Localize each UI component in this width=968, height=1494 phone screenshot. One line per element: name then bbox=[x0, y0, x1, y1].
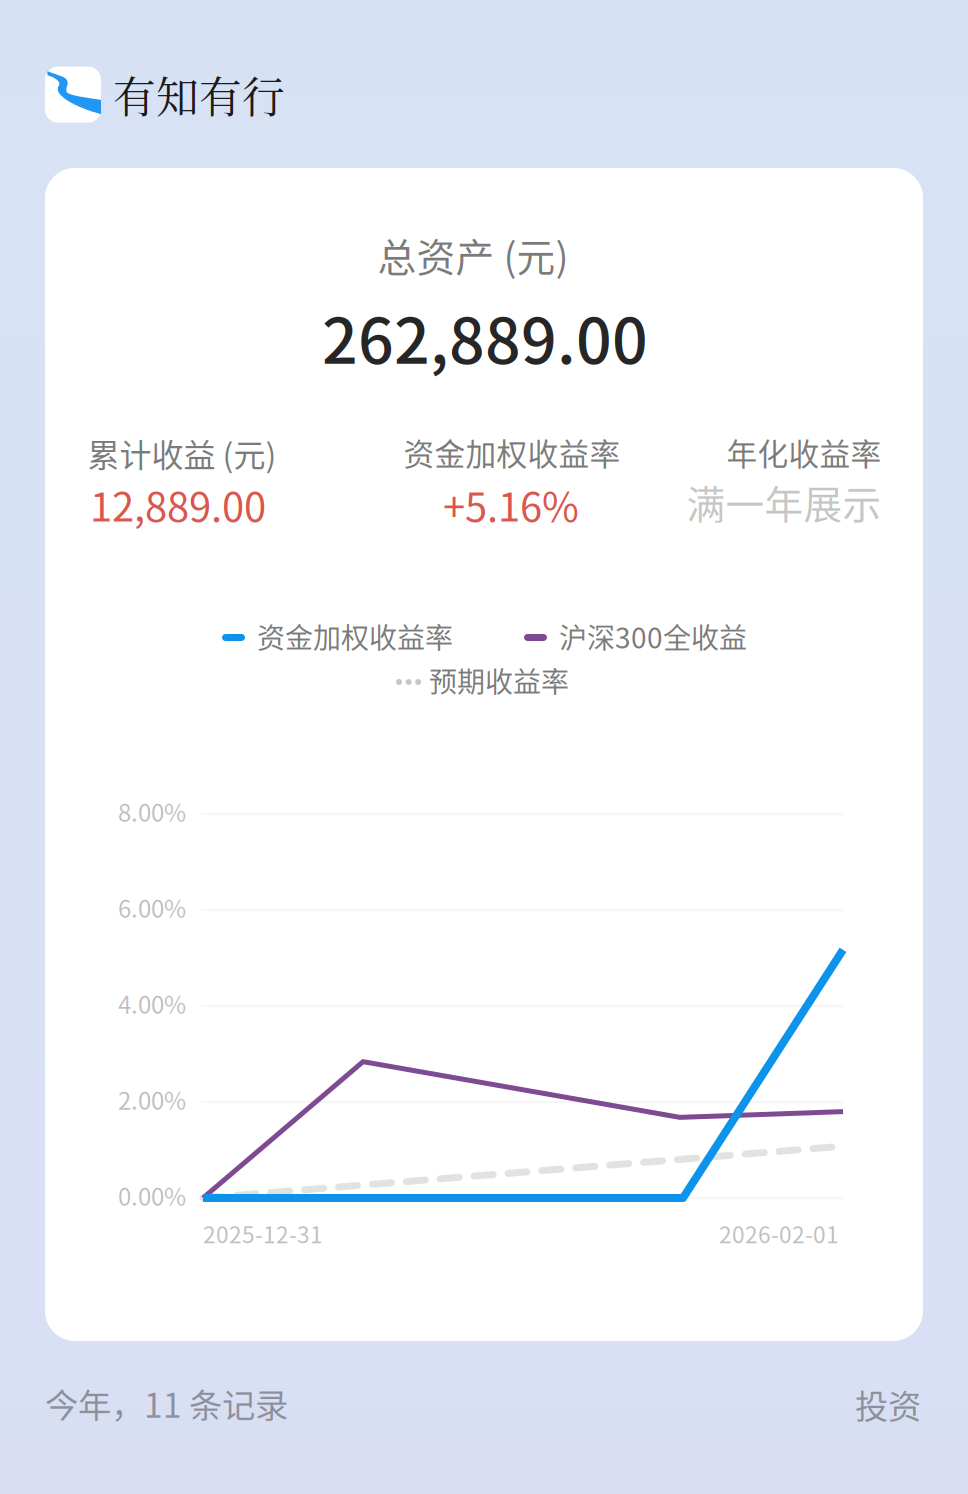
staticText: 262,889.00 bbox=[322, 291, 648, 382]
staticText: 6.00% bbox=[118, 890, 186, 925]
staticText: 资金加权收益率 bbox=[403, 430, 620, 474]
button[interactable]: 投资 bbox=[855, 1380, 921, 1428]
staticText: 2026-02-01 bbox=[719, 1217, 839, 1250]
staticText: 总资产 (元) bbox=[377, 227, 568, 283]
staticText: 预期收益率 bbox=[429, 660, 569, 700]
staticText: 累计收益 (元) bbox=[87, 430, 276, 476]
button[interactable]: 资金加权收益率 bbox=[222, 634, 245, 641]
button[interactable]: 今年，11 条记录 bbox=[45, 1379, 288, 1427]
button[interactable]: 有知有行 bbox=[45, 64, 285, 125]
staticText: 8.00% bbox=[118, 794, 186, 829]
staticText: 12,889.00 bbox=[90, 475, 266, 533]
staticText: 2.00% bbox=[118, 1082, 186, 1117]
staticText: 年化收益率 bbox=[726, 430, 881, 474]
staticText: 有知有行 bbox=[113, 64, 285, 125]
staticText: 资金加权收益率 bbox=[257, 616, 453, 656]
staticText: +5.16% bbox=[443, 475, 579, 533]
staticText: 2025-12-31 bbox=[203, 1217, 323, 1250]
staticText: 0.00% bbox=[118, 1178, 186, 1213]
staticText: 今年，11 条记录 bbox=[45, 1379, 288, 1427]
staticText: 满一年展示 bbox=[686, 474, 881, 530]
staticText: 沪深300全收益 bbox=[559, 616, 747, 656]
button[interactable]: 沪深300全收益 bbox=[524, 634, 547, 641]
staticText: 投资 bbox=[855, 1380, 921, 1428]
staticText: 4.00% bbox=[118, 986, 186, 1021]
